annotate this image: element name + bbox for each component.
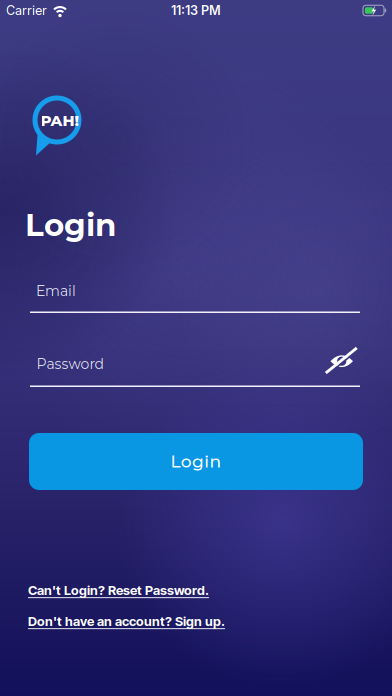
button[interactable]: Login [29, 433, 363, 490]
staticText: 11:13 PM [171, 3, 221, 18]
staticText: Email [36, 282, 76, 300]
staticText: Password [36, 355, 103, 373]
staticText: Login [170, 451, 222, 472]
staticText: Don't have an account? Sign up. [28, 613, 225, 629]
staticText: PAH! [40, 111, 79, 130]
button[interactable]: Don't have an account? Sign up. [28, 613, 225, 629]
button[interactable]: Show password [327, 347, 357, 373]
staticText: Login [25, 206, 116, 244]
staticText: Carrier [6, 3, 47, 18]
staticText: Can't Login? Reset Password. [28, 582, 209, 598]
button[interactable]: Can't Login? Reset Password. [28, 582, 209, 598]
